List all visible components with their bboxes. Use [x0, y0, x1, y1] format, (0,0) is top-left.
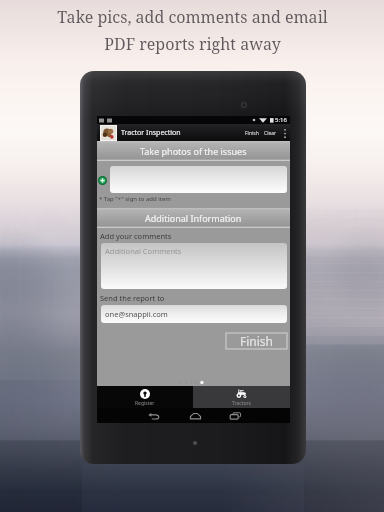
staticText: Additional Information	[145, 212, 242, 224]
staticText: Take photos of the issues	[140, 145, 247, 157]
button[interactable]: More options	[279, 124, 290, 142]
staticText: PDF reports right away	[104, 33, 281, 55]
staticText: one@snappii.com	[105, 309, 168, 319]
button[interactable]: Register	[97, 386, 193, 408]
staticText: Register	[135, 400, 155, 407]
staticText: Clear	[264, 130, 277, 137]
button[interactable]: Recents	[225, 408, 245, 423]
button[interactable]: Home	[185, 408, 205, 423]
staticText: Additional Comments	[105, 246, 182, 256]
staticText: Finish	[240, 333, 274, 349]
staticText: Take pics, add comments and email	[57, 6, 328, 28]
button[interactable]: one@snappii.com	[101, 305, 287, 323]
staticText: Add your comments	[100, 231, 172, 241]
button[interactable]	[110, 166, 287, 193]
button[interactable]: Additional Comments	[101, 243, 287, 289]
staticText: Tractor Inspection	[121, 128, 181, 138]
button[interactable]: Tractors	[193, 386, 290, 408]
button[interactable]: Finish	[243, 125, 261, 142]
staticText: 5:16	[275, 116, 287, 124]
staticText: Tractors	[232, 400, 251, 407]
staticText: Finish	[245, 130, 259, 137]
button[interactable]: Clear	[262, 125, 279, 142]
button[interactable]: Add item	[98, 176, 107, 185]
button[interactable]: Finish	[226, 333, 287, 349]
button[interactable]: Back	[143, 408, 163, 423]
staticText: * Tap "+" sign to add item	[99, 195, 171, 203]
staticText: Send the report to	[100, 293, 165, 303]
